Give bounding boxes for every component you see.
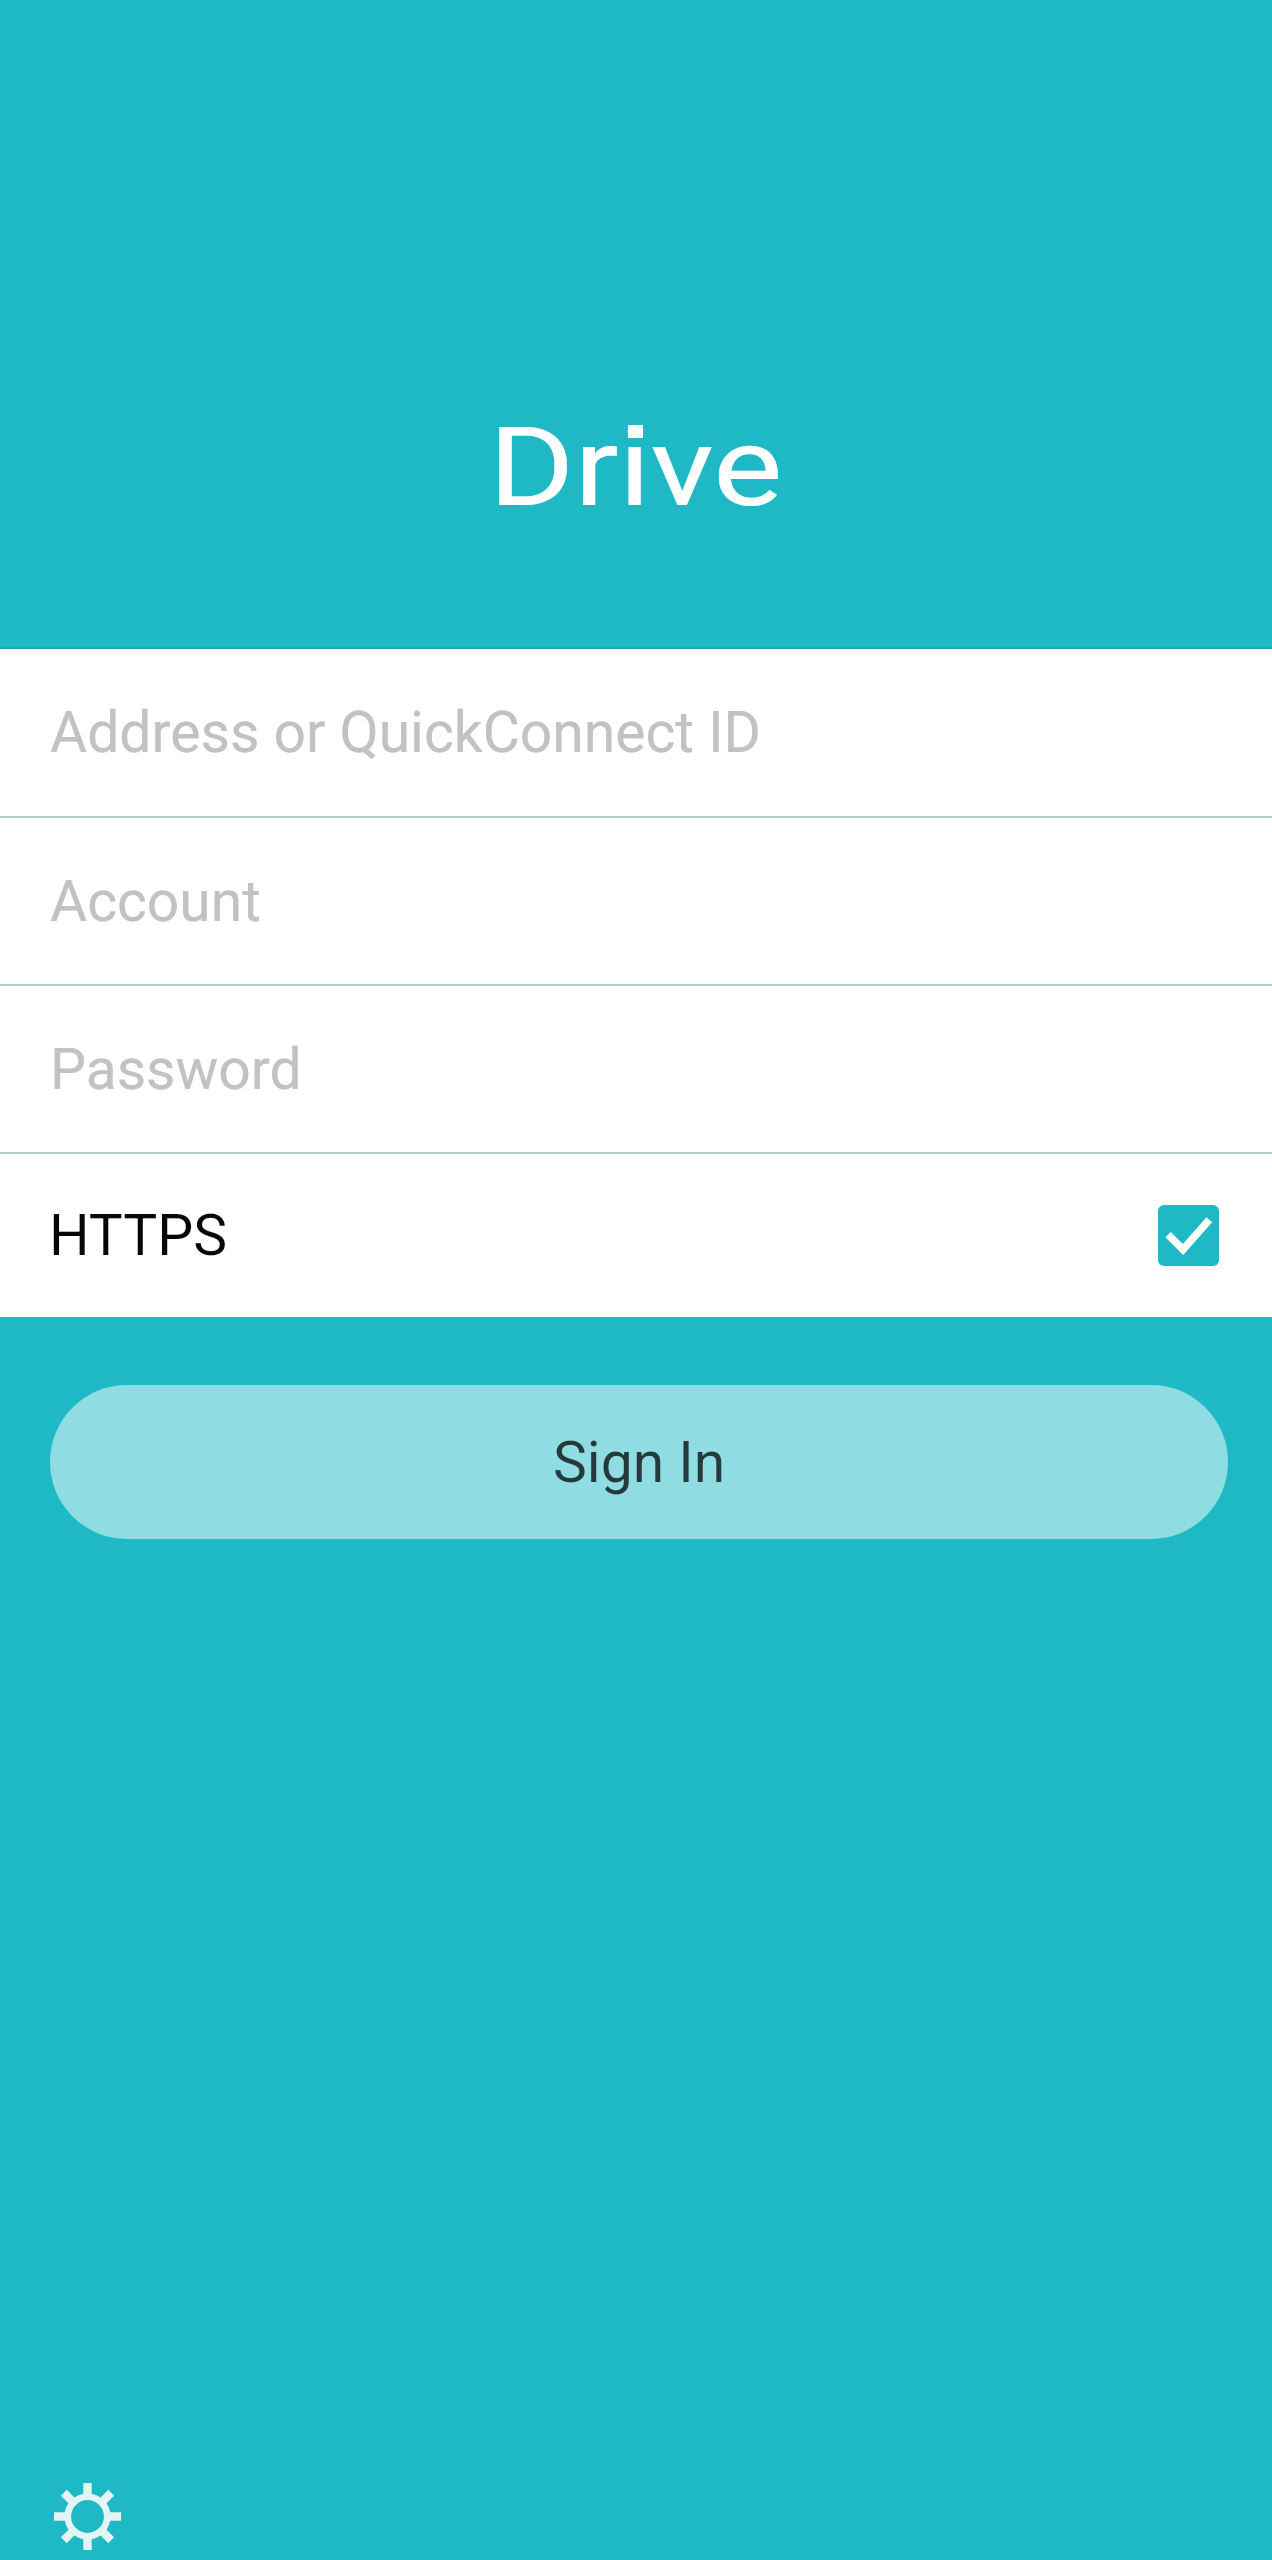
staticText: Drive — [488, 403, 783, 532]
staticText: HTTPS — [49, 1202, 228, 1269]
staticText: Account — [50, 868, 261, 935]
button[interactable]: Password — [0, 986, 1272, 1152]
button[interactable]: Account — [0, 818, 1272, 984]
staticText: Address or QuickConnect ID — [50, 699, 761, 766]
staticText: Sign In — [553, 1429, 726, 1496]
button[interactable]: HTTPS — [0, 1154, 1272, 1317]
staticText: Password — [50, 1036, 302, 1103]
button[interactable]: Settings — [20, 2460, 154, 2560]
button[interactable]: Sign In — [50, 1385, 1228, 1539]
button[interactable]: Address or QuickConnect ID — [0, 649, 1272, 816]
